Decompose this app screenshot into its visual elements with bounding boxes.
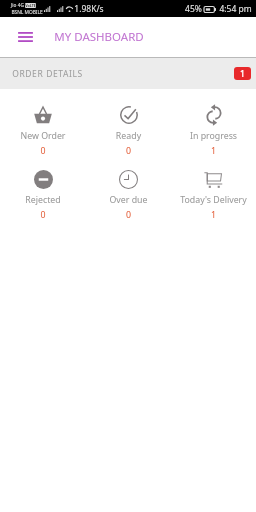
staticText: Jio 4G (11, 2, 24, 9)
button[interactable]: 1 (234, 67, 251, 80)
staticText: Today's Delivery (171, 194, 256, 206)
staticText: ORDER DETAILS (12, 68, 83, 80)
staticText: 1 (171, 145, 256, 157)
staticText: In progress (171, 130, 256, 142)
button[interactable]: Today's Delivery (171, 169, 256, 221)
button[interactable]: Ready (86, 106, 171, 157)
staticText: BSNL MOBILE (11, 9, 43, 16)
staticText: Rejected (0, 194, 86, 206)
button[interactable]: In progress (171, 106, 256, 157)
staticText: 1 (171, 209, 256, 221)
staticText: MY DASHBOARD (54, 29, 144, 45)
staticText: Over due (86, 194, 171, 206)
staticText: 0 (0, 209, 86, 221)
staticText: 4:54 pm (219, 3, 252, 15)
staticText: 0 (86, 145, 171, 157)
staticText: 1 (240, 68, 245, 80)
staticText: VoLTE (25, 3, 36, 8)
staticText: New Order (0, 130, 86, 142)
button[interactable]: New Order (0, 106, 86, 157)
staticText: 0 (0, 145, 86, 157)
button[interactable]: Open navigation menu (12, 24, 38, 50)
staticText: 0 (86, 209, 171, 221)
staticText: 45% (185, 3, 202, 15)
staticText: Ready (86, 130, 171, 142)
staticText: 1.98K/s (74, 3, 104, 15)
button[interactable]: Rejected (0, 169, 86, 221)
button[interactable]: Over due (86, 169, 171, 221)
